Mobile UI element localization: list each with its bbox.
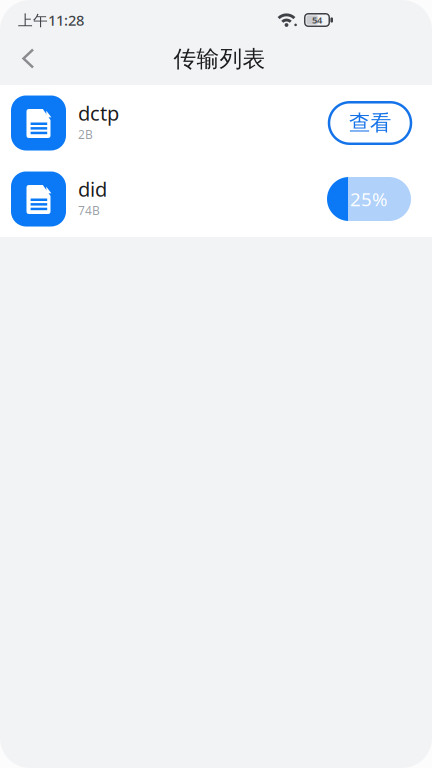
staticText: 传输列表: [173, 45, 265, 73]
button[interactable]: 查看: [329, 102, 411, 144]
staticText: 74B: [78, 202, 100, 218]
staticText: 2B: [78, 126, 93, 142]
staticText: dctp: [78, 100, 119, 126]
staticText: 查看: [349, 110, 391, 136]
button[interactable]: 返回: [13, 44, 45, 73]
staticText: 25%: [350, 187, 388, 211]
staticText: 54: [312, 14, 322, 26]
staticText: 上午11:28: [18, 10, 84, 30]
staticText: did: [78, 176, 107, 202]
